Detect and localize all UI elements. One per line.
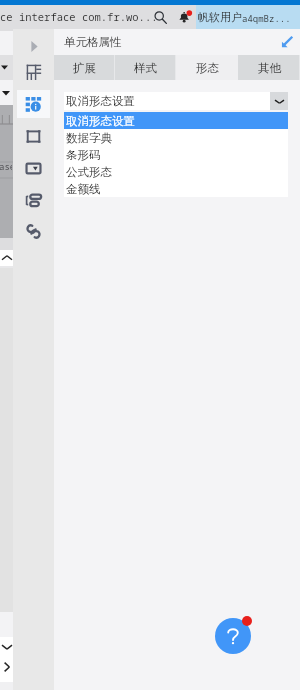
button[interactable]: 取消形态设置 [64,112,288,129]
button[interactable]: 公式形态 [64,163,288,180]
button[interactable]: 数据字典 [64,129,288,146]
button[interactable]: 条形码 [64,146,288,163]
button[interactable]: Expand [25,36,43,56]
button[interactable]: Frame [17,57,50,85]
button[interactable]: 金额线 [64,180,288,197]
button[interactable]: Search [149,5,171,29]
button[interactable]: Hyperlink [17,217,50,245]
staticText: 取消形态设置 [66,114,135,128]
staticText: a4qmBz... [242,12,291,24]
button[interactable]: 扩展 [54,55,115,80]
button[interactable]: 取消形态设置 [64,92,288,110]
staticText: 条形码 [66,148,101,162]
button[interactable]: 其他 [238,55,300,80]
staticText: 形态 [196,61,219,75]
staticText: ase [0,160,12,172]
staticText: 其他 [258,61,281,75]
button[interactable]: 样式 [115,55,176,80]
button[interactable]: Collapse panel [279,34,295,50]
button[interactable]: Layout [17,186,50,214]
staticText: 取消形态设置 [66,94,135,108]
staticText: 公式形态 [66,165,112,179]
staticText: 样式 [134,61,157,75]
staticText: 单元格属性 [64,35,122,49]
staticText: 数据字典 [66,131,112,145]
staticText: 金额线 [66,182,101,196]
staticText: ce interface com.fr.wo... [0,10,158,24]
button[interactable]: 形态 [176,55,238,80]
button[interactable]: Notifications [174,5,196,29]
staticText: 扩展 [73,61,96,75]
button[interactable]: Widget [17,154,50,182]
button[interactable]: Cell attributes [17,90,50,118]
button[interactable]: Border [17,122,50,150]
button[interactable]: Help [215,618,251,654]
staticText: 帆软用户 [198,10,242,24]
